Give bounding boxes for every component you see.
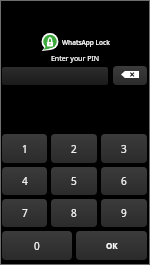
staticText: 6 bbox=[121, 174, 127, 188]
staticText: 1 bbox=[22, 142, 28, 156]
button[interactable]: 1 bbox=[2, 134, 47, 163]
button[interactable]: 8 bbox=[51, 199, 97, 227]
button[interactable]: 6 bbox=[101, 167, 147, 195]
button[interactable]: 5 bbox=[51, 167, 97, 195]
button[interactable] bbox=[2, 67, 108, 85]
button[interactable]: OK bbox=[76, 231, 147, 260]
staticText: WhatsApp Lock bbox=[62, 38, 110, 47]
button[interactable]: 2 bbox=[51, 134, 97, 163]
button[interactable]: 3 bbox=[101, 134, 147, 163]
button[interactable]: 9 bbox=[101, 199, 147, 227]
button[interactable]: 4 bbox=[2, 167, 47, 195]
staticText: Enter your PIN bbox=[0, 54, 150, 64]
staticText: 4 bbox=[22, 174, 28, 188]
button[interactable]: Backspace bbox=[113, 66, 147, 85]
button[interactable]: 7 bbox=[2, 199, 47, 227]
staticText: OK bbox=[106, 240, 118, 251]
staticText: 8 bbox=[71, 206, 77, 220]
button[interactable]: 0 bbox=[2, 231, 72, 260]
staticText: 3 bbox=[121, 142, 127, 156]
staticText: 5 bbox=[71, 174, 77, 188]
staticText: 2 bbox=[71, 142, 77, 156]
staticText: 7 bbox=[22, 206, 28, 220]
staticText: 0 bbox=[34, 239, 40, 253]
staticText: 9 bbox=[121, 206, 127, 220]
